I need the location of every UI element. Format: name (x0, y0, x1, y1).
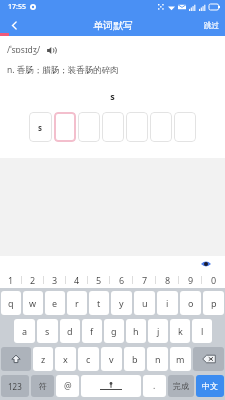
staticText: d (67, 325, 73, 337)
button[interactable]: z (33, 347, 53, 371)
button[interactable]: 符 (31, 375, 54, 397)
staticText: x (63, 353, 68, 365)
button[interactable]: Space (81, 375, 141, 397)
button[interactable]: n (147, 347, 168, 371)
staticText: 4 (74, 274, 80, 286)
button[interactable]: 5 (88, 271, 110, 288)
button[interactable]: 完成 (168, 375, 194, 397)
button[interactable]: 8 (156, 271, 179, 288)
button[interactable]: y (111, 291, 132, 315)
button[interactable]: s (37, 319, 58, 343)
staticText: p (211, 297, 217, 309)
staticText: 2 (30, 274, 36, 286)
staticText: n. 香肠；腊肠；装香肠的碎肉 (7, 64, 119, 76)
staticText: r (75, 297, 79, 309)
staticText: s (0, 90, 225, 102)
staticText: h (133, 325, 139, 337)
staticText: c (86, 353, 91, 365)
staticText: v (109, 353, 114, 365)
staticText: a (22, 325, 28, 337)
staticText: n (155, 353, 161, 365)
button[interactable]: Show word (201, 259, 211, 269)
staticText: o (188, 297, 194, 309)
staticText: m (176, 353, 185, 365)
button[interactable]: 0 (202, 271, 225, 288)
button[interactable] (126, 112, 148, 142)
staticText: 符 (39, 381, 47, 391)
button[interactable]: @ (56, 375, 79, 397)
button[interactable]: e (45, 291, 65, 315)
staticText: 6 (119, 274, 125, 286)
button[interactable]: 3 (44, 271, 66, 288)
button[interactable]: s (29, 112, 52, 142)
button[interactable]: o (180, 291, 201, 315)
button[interactable]: d (60, 319, 80, 343)
staticText: @ (64, 380, 72, 392)
button[interactable] (78, 112, 100, 142)
button[interactable]: l (192, 319, 212, 343)
button[interactable]: t (89, 291, 109, 315)
button[interactable]: v (101, 347, 122, 371)
button[interactable]: 4 (66, 271, 88, 288)
staticText: k (178, 325, 183, 337)
button[interactable]: p (203, 291, 224, 315)
button[interactable]: a (14, 319, 35, 343)
staticText: e (52, 297, 58, 309)
button[interactable]: q (1, 291, 21, 315)
staticText: /ˈsɒsɪdʒ/ (7, 44, 41, 56)
button[interactable]: 6 (110, 271, 133, 288)
button[interactable]: 9 (179, 271, 202, 288)
staticText: 中文 (202, 381, 218, 391)
button[interactable]: i (157, 291, 178, 315)
staticText: l (201, 325, 204, 337)
staticText: i (166, 297, 169, 309)
button[interactable]: j (148, 319, 168, 343)
button[interactable]: w (23, 291, 43, 315)
staticText: 跳过 (204, 21, 219, 30)
button[interactable]: Back (0, 14, 28, 36)
button[interactable]: . (143, 375, 166, 397)
staticText: 完成 (173, 381, 189, 391)
staticText: 1 (8, 274, 14, 286)
button[interactable]: u (134, 291, 155, 315)
staticText: u (142, 297, 148, 309)
staticText: 17:55 (8, 2, 26, 12)
button[interactable]: r (67, 291, 87, 315)
button[interactable]: 跳过 (204, 21, 219, 30)
button[interactable] (174, 112, 196, 142)
button[interactable]: h (126, 319, 146, 343)
staticText: t (97, 297, 101, 309)
button[interactable]: 中文 (196, 375, 224, 397)
staticText: f (90, 325, 94, 337)
button[interactable] (150, 112, 172, 142)
staticText: s (38, 122, 43, 133)
button[interactable]: 1 (0, 271, 22, 288)
staticText: z (41, 353, 46, 365)
button[interactable]: f (82, 319, 102, 343)
staticText: 7 (142, 274, 148, 286)
button[interactable]: Shift (1, 347, 31, 371)
staticText: g (111, 325, 117, 337)
button[interactable]: 2 (22, 271, 44, 288)
staticText: . (153, 380, 156, 392)
button[interactable]: b (124, 347, 145, 371)
button[interactable]: x (55, 347, 76, 371)
button[interactable] (54, 112, 76, 142)
button[interactable]: 123 (1, 375, 29, 397)
button[interactable]: Backspace (193, 347, 224, 371)
button[interactable]: m (170, 347, 191, 371)
staticText: 5 (96, 274, 102, 286)
button[interactable]: 7 (133, 271, 156, 288)
button[interactable]: g (104, 319, 124, 343)
staticText: q (8, 297, 14, 309)
button[interactable]: Play pronunciation (46, 45, 57, 56)
button[interactable] (102, 112, 124, 142)
button[interactable]: c (78, 347, 99, 371)
staticText: 单词默写 (93, 19, 133, 32)
staticText: s (45, 325, 50, 337)
staticText: b (132, 353, 138, 365)
staticText: 123 (8, 381, 22, 392)
button[interactable]: k (170, 319, 190, 343)
staticText: w (29, 297, 37, 309)
staticText: 9 (188, 274, 194, 286)
